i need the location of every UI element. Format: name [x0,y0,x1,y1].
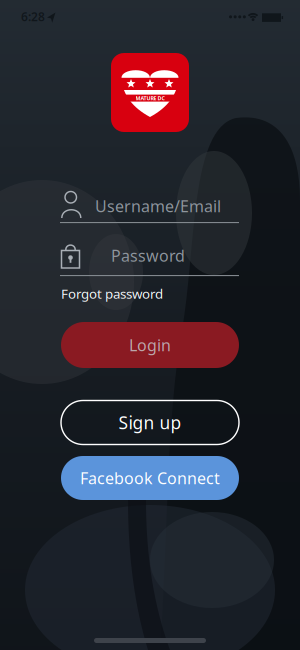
button[interactable]: Login [61,322,239,368]
staticText: MATURE DC [135,95,164,102]
button[interactable]: Sign up [61,400,239,444]
staticText: Password [111,245,185,266]
staticText: Sign up [118,411,181,434]
staticText: Username/Email [95,195,221,217]
staticText: Forgot password [61,285,163,302]
button[interactable]: Mature DC [111,53,189,132]
staticText: Login [129,334,171,356]
button[interactable]: Password [60,239,240,275]
staticText: 6:28 [21,8,45,24]
staticText: Facebook Connect [80,467,220,489]
button[interactable]: Forgot password [61,284,211,302]
button[interactable]: Username or Email [60,187,240,223]
button[interactable]: Facebook Connect [61,456,239,500]
